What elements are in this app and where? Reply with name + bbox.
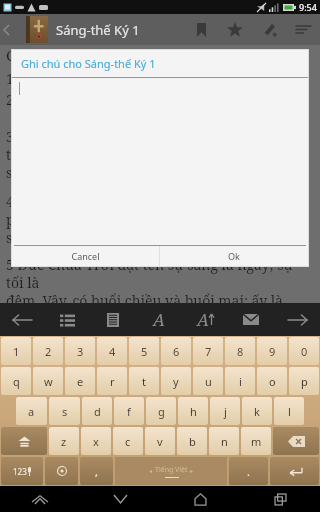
button[interactable]: 2 (33, 337, 63, 365)
staticText: d (94, 404, 101, 419)
button[interactable]: m (241, 427, 271, 455)
button[interactable]: Reading layout (90, 303, 136, 336)
button[interactable]: e (65, 367, 95, 395)
button[interactable]: Recent apps (240, 486, 320, 512)
button[interactable]: j (210, 397, 240, 425)
button[interactable]: d (82, 397, 112, 425)
staticText: Cancel (71, 250, 100, 262)
button[interactable]: y (161, 367, 191, 395)
button[interactable]: Backspace (273, 427, 319, 455)
button[interactable]: 0 (289, 337, 319, 365)
button[interactable]: x (81, 427, 111, 455)
staticText: g (158, 404, 165, 419)
button[interactable]: 3 (65, 337, 95, 365)
button[interactable]: Keyboard (0, 486, 80, 512)
staticText: 6 (173, 344, 180, 359)
staticText: 9:54 (299, 1, 317, 13)
staticText: 2 (45, 344, 52, 359)
staticText: t (142, 374, 146, 389)
staticText: c (125, 434, 131, 449)
button[interactable]: Space (115, 457, 227, 485)
staticText: m (251, 434, 262, 449)
button[interactable]: Enter (270, 457, 319, 485)
button[interactable]: Favorite (218, 14, 252, 45)
staticText: 1 Ban đầu Đức Chúa Trời dựng nên trời đấ… (6, 69, 298, 88)
button[interactable]: a (16, 397, 47, 425)
button[interactable]: 9 (257, 337, 287, 365)
button[interactable]: Numbers and voice input (1, 457, 43, 485)
staticText: a (28, 404, 35, 419)
button[interactable]: c (113, 427, 143, 455)
staticText: Ok (228, 250, 240, 262)
staticText: Vả, đất là vô hình và trống không (17, 90, 238, 109)
button[interactable]: Chapter list (45, 303, 90, 336)
button[interactable]: k (242, 397, 272, 425)
button[interactable]: 6 (161, 337, 191, 365)
staticText: o (269, 374, 276, 389)
button[interactable]: q (1, 367, 31, 395)
button[interactable]: u (193, 367, 223, 395)
button[interactable]: Comma (80, 457, 113, 485)
staticText: Sáng-thế Ký 1 (56, 21, 140, 39)
staticText: 5 Đức Chúa Trời đặt tên sự sáng là ngày;… (6, 255, 314, 303)
staticText: v (157, 434, 163, 449)
button[interactable]: Overflow menu (286, 14, 320, 45)
button[interactable]: Home (160, 486, 240, 512)
staticText: u (205, 374, 212, 389)
button[interactable]: r (97, 367, 127, 395)
staticText: 3 (77, 344, 84, 359)
button[interactable]: s (49, 397, 80, 425)
button[interactable]: Cancel (12, 246, 159, 266)
staticText: . (247, 464, 250, 479)
button[interactable]: Font size (182, 303, 228, 336)
staticText: j (224, 404, 227, 419)
button[interactable]: b (177, 427, 207, 455)
button[interactable]: Shift (1, 427, 47, 455)
button[interactable]: z (49, 427, 79, 455)
staticText: ◂ (149, 467, 153, 474)
staticText: 8 (237, 344, 244, 359)
staticText: 5 (141, 344, 148, 359)
staticText: b (189, 434, 196, 449)
staticText: w (44, 374, 53, 389)
staticText: , (95, 464, 98, 479)
button[interactable]: Share by email (228, 303, 274, 336)
button[interactable]: Settings (45, 457, 78, 485)
button[interactable]: p (289, 367, 319, 395)
button[interactable]: o (257, 367, 287, 395)
staticText: 4 (109, 344, 116, 359)
button[interactable]: v (145, 427, 175, 455)
button[interactable]: Add note (252, 14, 286, 45)
button[interactable]: Navigate up (0, 14, 12, 45)
button[interactable]: i (225, 367, 255, 395)
button[interactable]: Previous chapter (0, 303, 45, 336)
staticText: z (61, 434, 67, 449)
button[interactable]: 1 (1, 337, 31, 365)
button[interactable]: h (178, 397, 208, 425)
button[interactable]: f (114, 397, 144, 425)
button[interactable]: Bookmark (184, 14, 218, 45)
button[interactable]: n (209, 427, 239, 455)
button[interactable]: 8 (225, 337, 255, 365)
button[interactable]: g (146, 397, 176, 425)
button[interactable]: 4 (97, 337, 127, 365)
button[interactable]: l (274, 397, 304, 425)
staticText: 4 Đức Chúa Trời thấy sự sáng là tốt lành… (6, 192, 314, 247)
staticText: 9 (269, 344, 276, 359)
button[interactable]: w (33, 367, 63, 395)
staticText: i (239, 374, 242, 389)
button[interactable]: 7 (193, 337, 223, 365)
button[interactable]: t (129, 367, 159, 395)
button[interactable]: Back (80, 486, 160, 512)
staticText: n (221, 434, 228, 449)
staticText: p (301, 374, 308, 389)
button[interactable]: Font (136, 303, 182, 336)
staticText: x (93, 434, 99, 449)
button[interactable]: Period (229, 457, 268, 485)
staticText: ▸ (190, 467, 194, 474)
button[interactable]: Next chapter (274, 303, 320, 336)
button[interactable]: Ok (160, 246, 308, 266)
button[interactable]: 5 (129, 337, 159, 365)
staticText: l (288, 404, 291, 419)
staticText: A (153, 308, 165, 331)
